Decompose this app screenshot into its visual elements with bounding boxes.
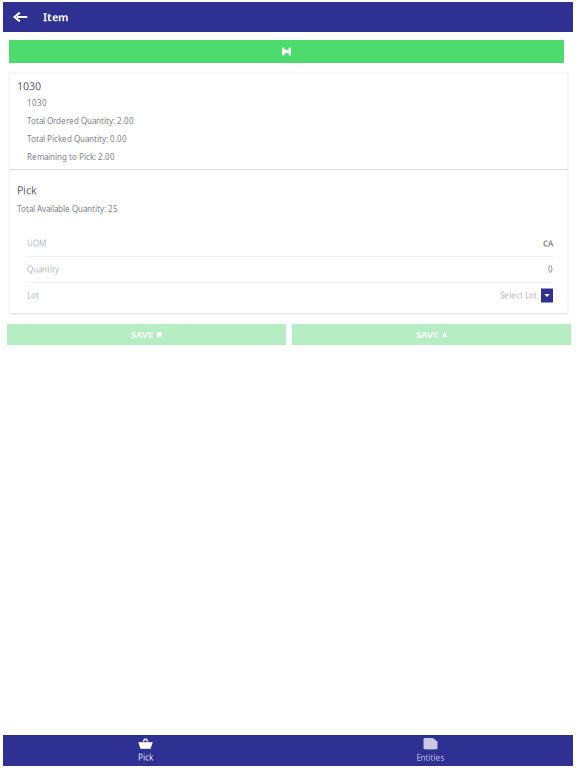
staticText: Pick	[138, 752, 153, 763]
staticText: Entities	[416, 752, 444, 763]
staticText: Item	[43, 10, 68, 24]
button[interactable]: Entities	[288, 735, 573, 766]
staticText: Lot	[27, 290, 39, 301]
button[interactable]: Pick	[3, 735, 288, 766]
button[interactable]: SAVE	[292, 324, 571, 345]
button[interactable]: SAVE	[7, 324, 286, 345]
staticText: Quantity	[27, 264, 59, 275]
staticText: 1030	[27, 98, 47, 108]
button[interactable]: Back	[6, 2, 34, 32]
staticText: SAVE	[416, 328, 438, 341]
staticText: 0	[548, 264, 553, 275]
staticText: Pick	[17, 183, 37, 197]
staticText: UOM	[27, 238, 46, 249]
staticText: Remaining to Pick: 2.00	[27, 152, 115, 162]
button[interactable]: Scan barcode	[9, 40, 564, 63]
staticText: Select Lot	[500, 290, 537, 301]
staticText: CA	[543, 238, 553, 249]
staticText: SAVE	[131, 328, 153, 341]
staticText: 1030	[17, 79, 41, 93]
button[interactable]: Choose lot	[541, 288, 553, 302]
staticText: Total Picked Quantity: 0.00	[27, 134, 127, 144]
staticText: Total Ordered Quantity: 2.00	[27, 116, 134, 126]
staticText: Total Available Quantity: 25	[17, 204, 118, 214]
